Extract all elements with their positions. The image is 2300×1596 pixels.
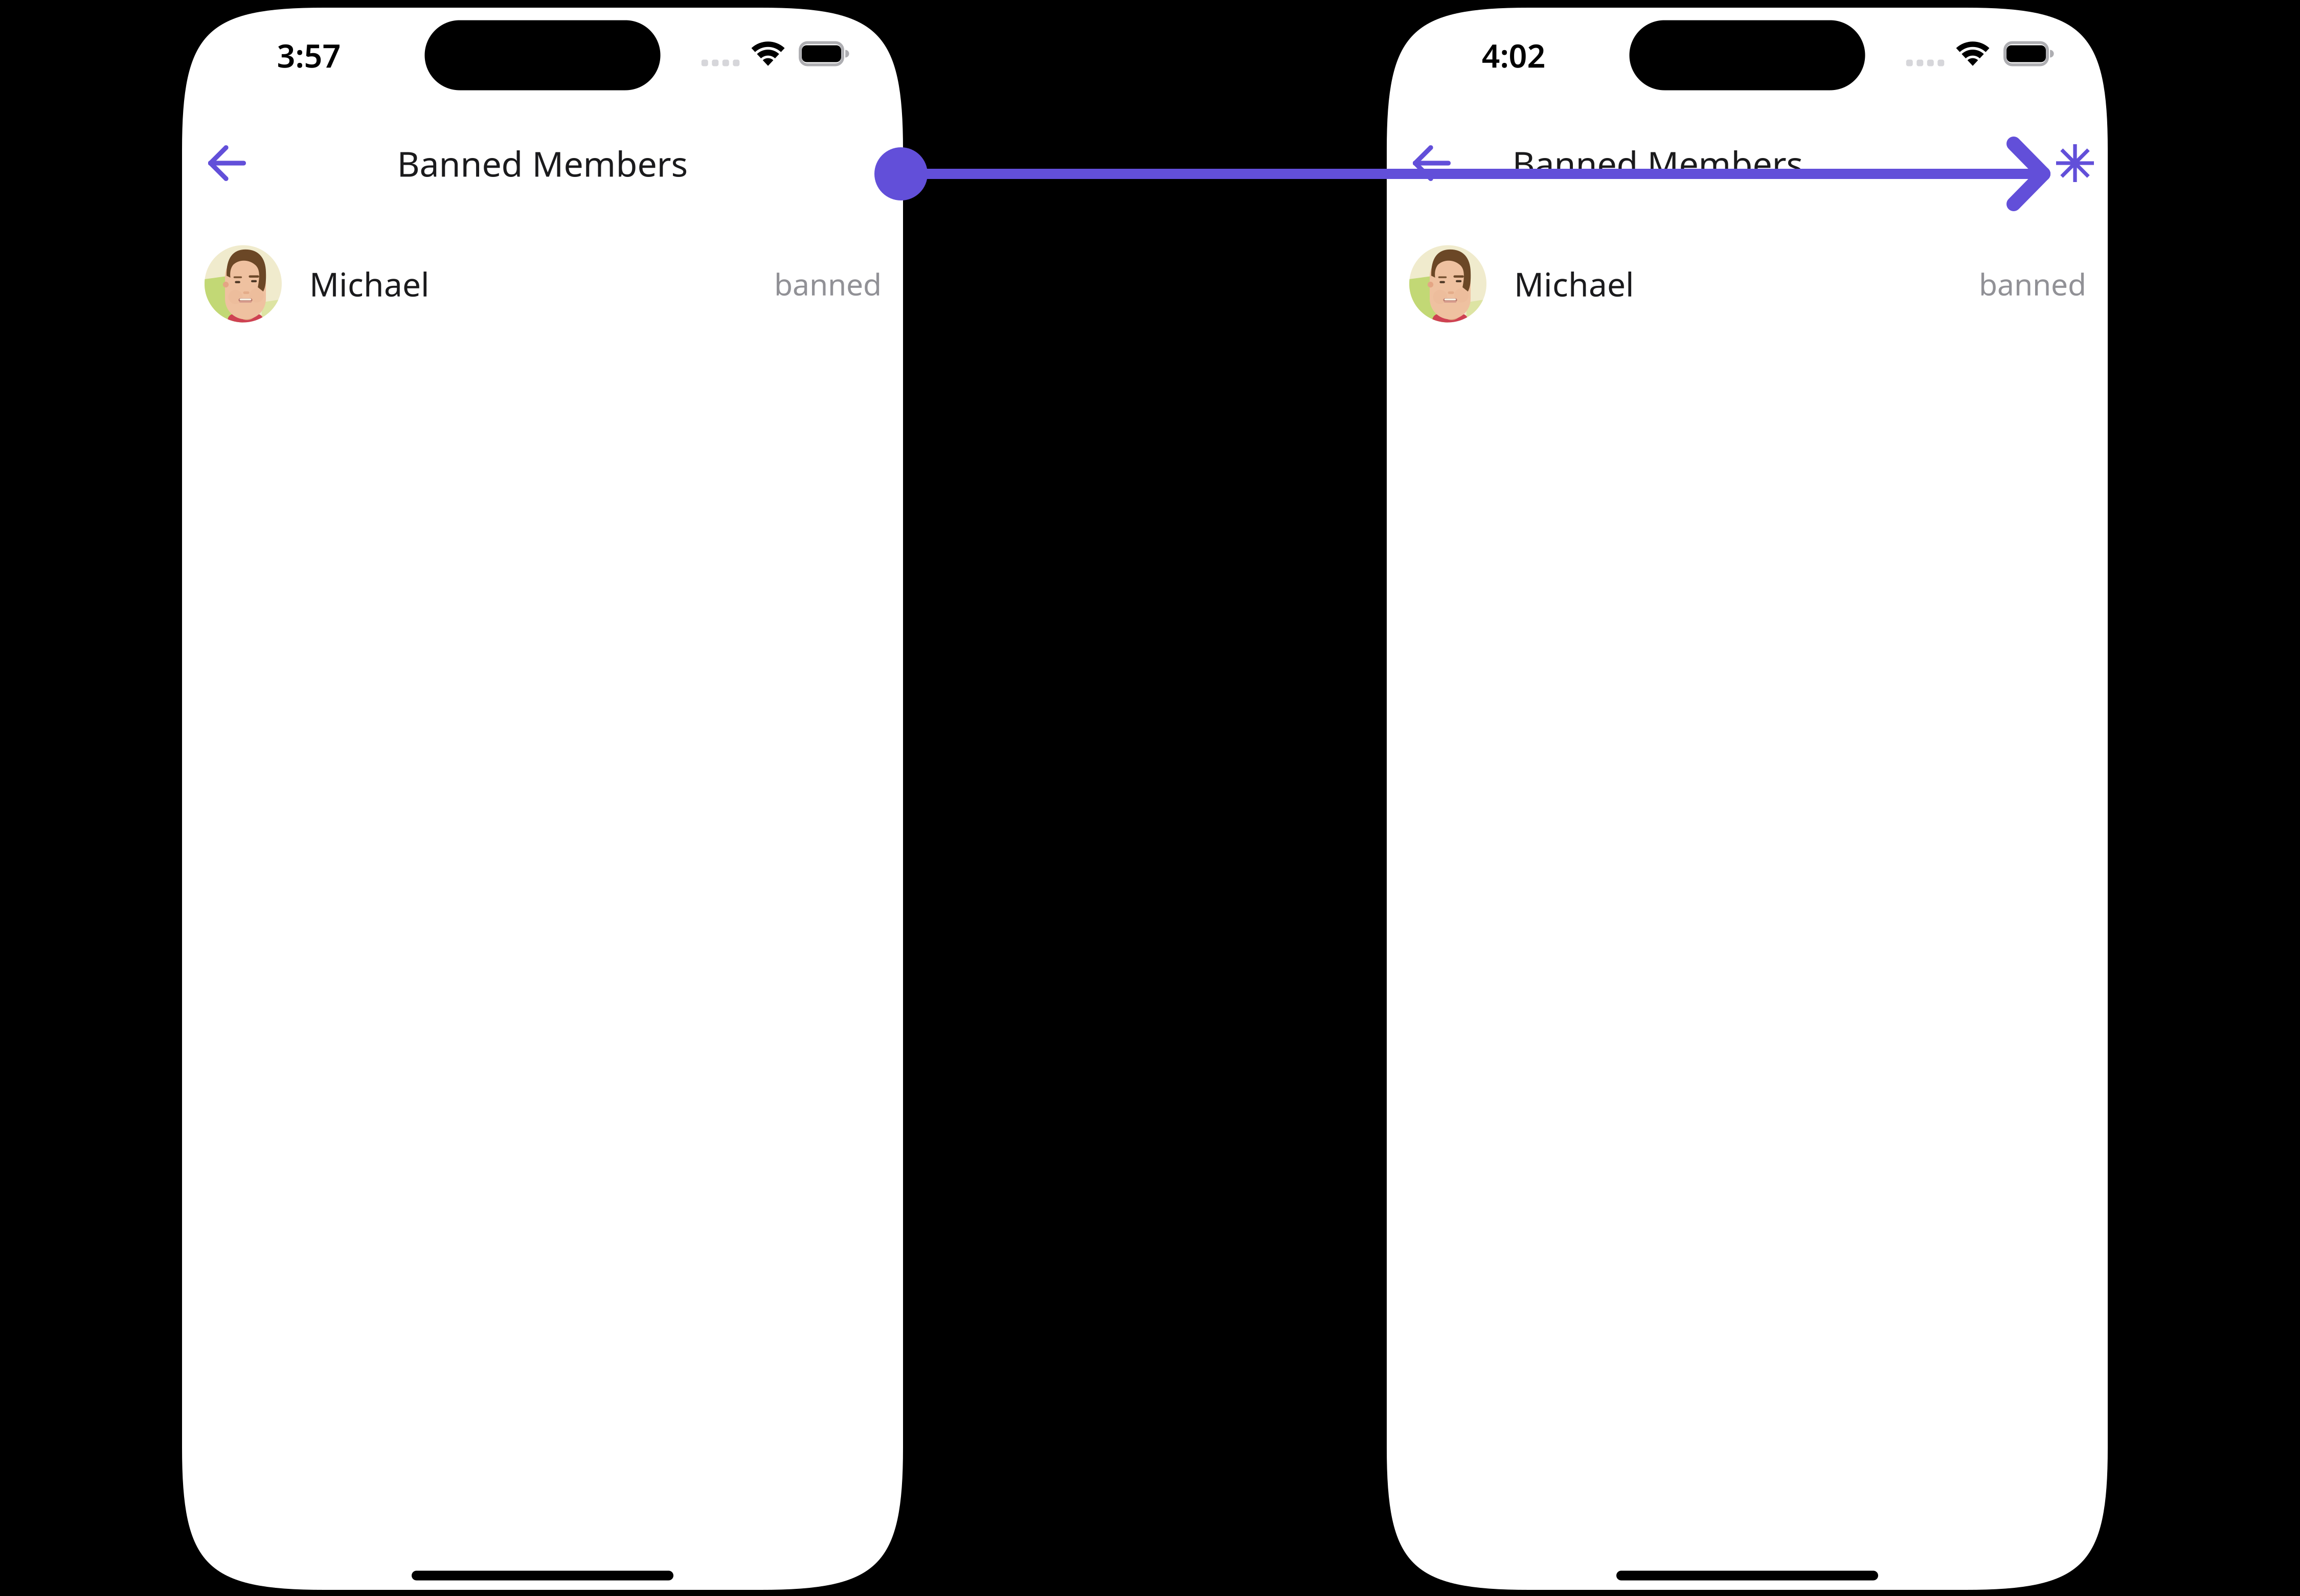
staticText: banned (774, 264, 882, 304)
button[interactable]: Michael (1387, 233, 2108, 335)
staticText: Michael (309, 262, 430, 306)
staticText: Banned Members (397, 140, 688, 186)
button[interactable]: Michael (182, 233, 903, 335)
staticText: 3:57 (277, 34, 341, 77)
button[interactable]: Freeze member list (2039, 127, 2111, 199)
staticText: Banned Members (1512, 140, 1803, 186)
staticText: Michael (1514, 262, 1634, 306)
staticText: banned (1979, 264, 2086, 304)
staticText: 4:02 (1482, 34, 1546, 77)
button[interactable]: Back (1396, 127, 1468, 199)
button[interactable]: Back (191, 127, 263, 199)
